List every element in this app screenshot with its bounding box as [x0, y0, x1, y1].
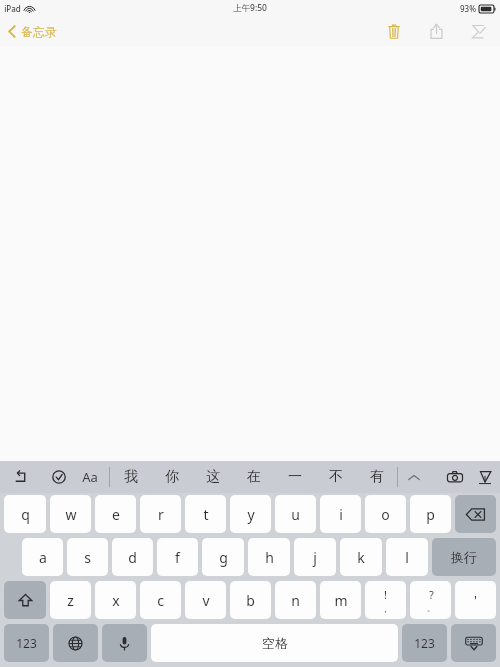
button[interactable]: k [340, 538, 382, 576]
staticText: ' [474, 591, 477, 609]
staticText: n [291, 591, 300, 610]
button[interactable]: b [230, 581, 271, 619]
staticText: g [219, 548, 228, 567]
staticText: iPad [4, 3, 21, 14]
button[interactable]: 不 [315, 461, 356, 493]
staticText: 不 [329, 468, 343, 486]
button[interactable]: Compose [465, 21, 492, 42]
staticText: t [203, 505, 209, 524]
staticText: i [339, 505, 343, 524]
staticText: q [21, 505, 30, 524]
button[interactable]: Undo [10, 465, 31, 489]
button[interactable]: w [50, 495, 91, 533]
button[interactable]: t [185, 495, 226, 533]
staticText: u [291, 505, 300, 524]
staticText: h [265, 548, 274, 567]
staticText: 123 [414, 635, 435, 651]
staticText: s [84, 548, 91, 567]
button[interactable]: l [386, 538, 428, 576]
button[interactable]: Backspace [455, 495, 496, 533]
staticText: k [357, 548, 365, 567]
button[interactable]: x [95, 581, 136, 619]
button[interactable]: Shift [4, 581, 46, 619]
staticText: p [426, 505, 435, 524]
button[interactable]: 备忘录 [0, 21, 65, 42]
staticText: 换行 [451, 549, 477, 565]
staticText: , [384, 603, 387, 614]
staticText: l [405, 548, 409, 567]
staticText: 一 [288, 468, 302, 486]
staticText: 在 [247, 468, 261, 486]
button[interactable]: More candidates [398, 461, 430, 493]
button[interactable]: y [230, 495, 271, 533]
button[interactable]: 123 [402, 624, 447, 662]
staticText: w [65, 505, 77, 524]
button[interactable]: p [410, 495, 451, 533]
button[interactable]: Share [422, 20, 451, 42]
button[interactable]: n [275, 581, 316, 619]
staticText: 备忘录 [21, 24, 57, 39]
staticText: m [334, 591, 348, 610]
button[interactable]: i [320, 495, 361, 533]
button[interactable]: o [365, 495, 406, 533]
staticText: o [381, 505, 390, 524]
staticText: 空格 [262, 635, 288, 651]
staticText: z [67, 591, 74, 610]
button[interactable]: 空格 [151, 624, 398, 662]
button[interactable]: ? [410, 581, 451, 619]
staticText: e [112, 505, 120, 524]
button[interactable]: Switch language [53, 624, 98, 662]
button[interactable]: u [275, 495, 316, 533]
staticText: v [202, 591, 210, 610]
staticText: r [158, 505, 164, 524]
staticText: 我 [124, 468, 138, 486]
staticText: ? [429, 587, 434, 602]
button[interactable]: c [140, 581, 181, 619]
button[interactable]: g [202, 538, 244, 576]
button[interactable]: 我 [110, 461, 151, 493]
button[interactable]: 一 [274, 461, 315, 493]
button[interactable]: d [112, 538, 153, 576]
staticText: 有 [370, 468, 384, 486]
staticText: ! [384, 587, 387, 602]
button[interactable]: 你 [151, 461, 192, 493]
button[interactable]: v [185, 581, 226, 619]
button[interactable]: 在 [233, 461, 274, 493]
staticText: 上午9:50 [233, 2, 267, 14]
button[interactable]: Text format [79, 464, 101, 490]
button[interactable]: e [95, 495, 136, 533]
staticText: a [39, 548, 47, 567]
button[interactable]: 换行 [432, 538, 496, 576]
staticText: 。 [427, 603, 435, 613]
button[interactable]: z [50, 581, 91, 619]
button[interactable]: Camera [443, 465, 467, 489]
staticText: f [175, 548, 180, 567]
staticText: j [313, 548, 317, 567]
button[interactable]: f [157, 538, 198, 576]
button[interactable]: 有 [356, 461, 397, 493]
button[interactable]: Dictation [102, 624, 147, 662]
button[interactable]: ' [455, 581, 496, 619]
staticText: 这 [206, 468, 220, 486]
button[interactable]: 123 [4, 624, 49, 662]
button[interactable]: Handwriting [475, 465, 495, 489]
staticText: 123 [16, 635, 37, 651]
button[interactable]: Delete [380, 21, 408, 42]
button[interactable]: Hide keyboard [451, 624, 496, 662]
button[interactable]: m [320, 581, 361, 619]
staticText: b [246, 591, 255, 610]
button[interactable]: r [140, 495, 181, 533]
button[interactable]: Done [49, 465, 69, 489]
button[interactable]: ! [365, 581, 406, 619]
button[interactable]: h [248, 538, 290, 576]
staticText: y [247, 505, 255, 524]
staticText: c [157, 591, 164, 610]
button[interactable]: 这 [192, 461, 233, 493]
button[interactable]: s [67, 538, 108, 576]
button[interactable]: a [22, 538, 63, 576]
button[interactable]: q [4, 495, 46, 533]
staticText: Aa [82, 468, 98, 486]
staticText: x [112, 591, 120, 610]
button[interactable]: j [294, 538, 336, 576]
staticText: 你 [165, 468, 179, 486]
